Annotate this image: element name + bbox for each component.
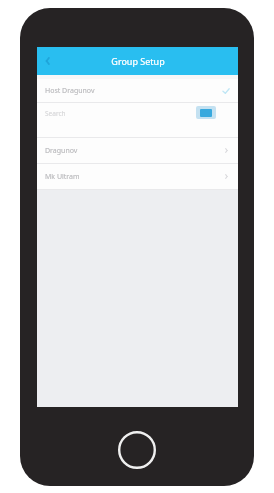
button[interactable]: Back <box>37 50 59 72</box>
button[interactable]: Home <box>117 430 157 470</box>
staticText: Search <box>45 109 66 118</box>
button[interactable]: Dragunov <box>37 138 238 163</box>
staticText: Host Dragunov <box>45 86 95 96</box>
button[interactable]: Search <box>37 103 238 137</box>
button[interactable]: Mk Ultram <box>37 164 238 189</box>
staticText: Mk Ultram <box>45 172 80 182</box>
staticText: Dragunov <box>45 146 78 156</box>
staticText: Group Setup <box>111 55 165 67</box>
button[interactable]: Host Dragunov <box>37 79 238 102</box>
button[interactable]: Selected group <box>196 106 216 119</box>
